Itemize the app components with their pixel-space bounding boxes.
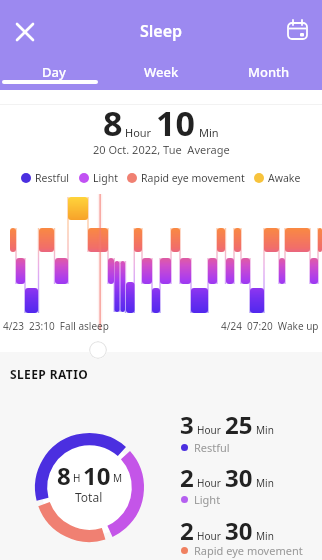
staticText: Total xyxy=(75,489,103,505)
staticText: 8 xyxy=(57,459,71,489)
staticText: 25 xyxy=(225,408,253,441)
staticText: Light xyxy=(194,492,221,507)
staticText: SLEEP RATIO xyxy=(10,366,89,382)
staticText: Restful xyxy=(194,440,230,455)
staticText: Min xyxy=(199,125,219,140)
staticText: Week xyxy=(144,63,179,81)
staticText: 10 xyxy=(83,459,111,489)
staticText: 3 xyxy=(180,408,194,441)
staticText: Sleep xyxy=(140,20,183,42)
button[interactable]: Day xyxy=(0,55,108,89)
staticText: Rapid eye movement xyxy=(194,543,303,558)
button[interactable] xyxy=(283,15,313,45)
staticText: 8 xyxy=(103,100,123,146)
staticText: Hour xyxy=(197,529,221,543)
staticText: Rapid eye movement xyxy=(141,171,245,185)
staticText: Awake xyxy=(268,171,301,185)
staticText: 20 Oct. 2022, Tue Average xyxy=(93,142,230,157)
staticText: 2 xyxy=(180,461,194,494)
staticText: Hour xyxy=(197,476,221,490)
staticText: 30 xyxy=(225,514,253,547)
button[interactable]: Week xyxy=(108,55,215,89)
staticText: M xyxy=(113,471,123,485)
staticText: Hour xyxy=(125,125,152,140)
staticText: Min xyxy=(256,476,274,490)
staticText: Hour xyxy=(197,423,221,437)
staticText: 2 xyxy=(180,514,194,547)
staticText: 10 xyxy=(156,100,195,146)
staticText: Min xyxy=(256,423,274,437)
staticText: 30 xyxy=(225,461,253,494)
staticText: Restful xyxy=(35,171,70,185)
staticText: Light xyxy=(93,171,118,185)
button[interactable] xyxy=(10,17,40,47)
staticText: 4/23 23:10 Fall asleep xyxy=(3,319,109,333)
button[interactable]: Month xyxy=(215,55,322,89)
staticText: 4/24 07:20 Wake up xyxy=(221,319,319,333)
staticText: Month xyxy=(248,63,290,81)
staticText: Day xyxy=(42,63,66,81)
staticText: Min xyxy=(256,529,274,543)
staticText: H xyxy=(73,471,81,485)
